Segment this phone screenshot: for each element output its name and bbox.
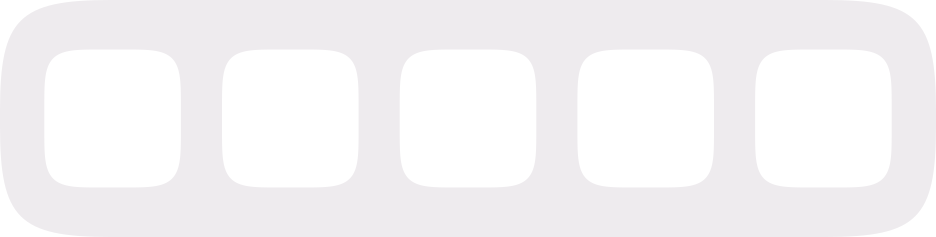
button[interactable]: Key 5 <box>755 49 892 187</box>
button[interactable]: Key 1 <box>44 49 181 187</box>
button[interactable]: Key 4 <box>577 49 714 187</box>
button[interactable]: Key 2 <box>222 49 359 187</box>
button[interactable]: Key 3 <box>400 49 536 187</box>
